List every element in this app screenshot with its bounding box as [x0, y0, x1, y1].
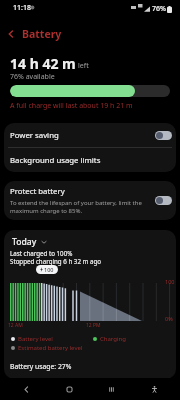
- button[interactable]: Power saving: [4, 123, 176, 147]
- staticText: 100: [44, 266, 54, 273]
- staticText: Last charged to 100%: [10, 249, 73, 257]
- staticText: Battery level: [18, 335, 53, 343]
- staticText: 76% available: [10, 72, 55, 82]
- staticText: Today: [12, 236, 37, 248]
- staticText: 11:18: [13, 3, 31, 13]
- staticText: Battery usage: 27%: [10, 362, 72, 371]
- staticText: Stopped charging 6 h 32 m ago: [10, 257, 101, 265]
- staticText: 76%: [152, 4, 166, 14]
- staticText: left: [78, 61, 89, 71]
- button[interactable]: Accessibility: [137, 378, 171, 400]
- staticText: Power saving: [10, 130, 59, 141]
- staticText: Charging: [100, 335, 126, 343]
- button[interactable]: Back: [0, 22, 180, 46]
- staticText: Protect battery: [10, 186, 65, 197]
- staticText: To extend the lifespan of your battery, …: [10, 199, 142, 215]
- button[interactable]: Background usage limits: [4, 148, 176, 172]
- staticText: 0%: [165, 315, 173, 322]
- staticText: 12 PM: [86, 322, 101, 329]
- staticText: Estimated battery level: [18, 344, 83, 352]
- staticText: 14 h 42 m: [10, 54, 76, 73]
- button[interactable]: Today: [10, 234, 49, 250]
- button[interactable]: Home: [52, 378, 86, 400]
- other: Back: [0, 22, 22, 46]
- button[interactable]: Back: [9, 378, 43, 400]
- staticText: 12 AM: [8, 322, 23, 329]
- button[interactable]: Toggle: [155, 131, 172, 140]
- staticText: Battery: [22, 27, 62, 41]
- button[interactable]: Toggle: [155, 196, 172, 205]
- button[interactable]: Recents: [94, 378, 128, 400]
- staticText: 100: [165, 278, 175, 285]
- staticText: Background usage limits: [10, 155, 101, 166]
- staticText: A full charge will last about 19 h 21 m: [10, 101, 133, 111]
- button[interactable]: Protect battery: [4, 181, 176, 220]
